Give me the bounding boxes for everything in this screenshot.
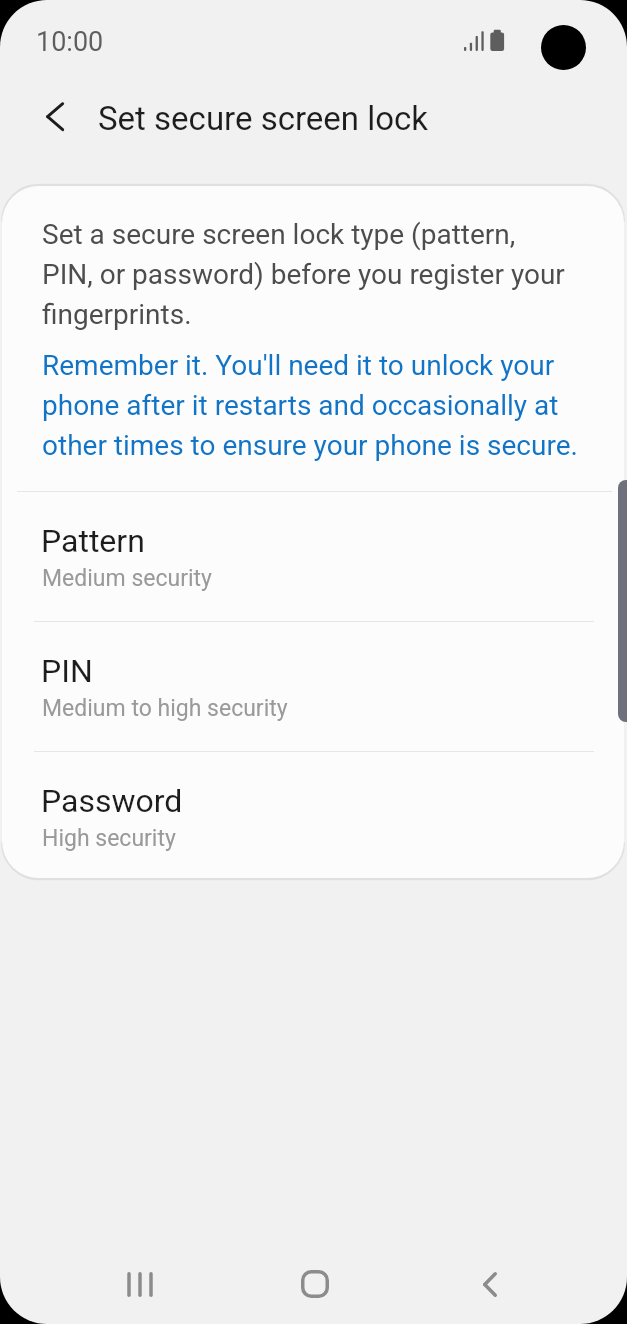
staticText: Pattern: [41, 522, 145, 560]
button[interactable]: Back: [440, 1244, 540, 1324]
staticText: High security: [42, 825, 176, 852]
button[interactable]: Password: [2, 752, 624, 878]
staticText: PIN: [41, 652, 93, 690]
staticText: Password: [41, 782, 183, 820]
staticText: Remember it. You'll need it to unlock yo…: [42, 343, 578, 463]
button[interactable]: Home: [265, 1244, 365, 1324]
staticText: 10:00: [36, 26, 104, 58]
button[interactable]: Pattern: [2, 492, 624, 621]
staticText: Medium to high security: [42, 695, 288, 722]
button[interactable]: Navigate up: [23, 92, 73, 142]
staticText: Set secure screen lock: [98, 99, 429, 138]
staticText: Medium security: [42, 565, 212, 592]
button[interactable]: Recent apps: [90, 1244, 190, 1324]
staticText: Set a secure screen lock type (pattern, …: [42, 212, 565, 332]
button[interactable]: PIN: [2, 622, 624, 751]
